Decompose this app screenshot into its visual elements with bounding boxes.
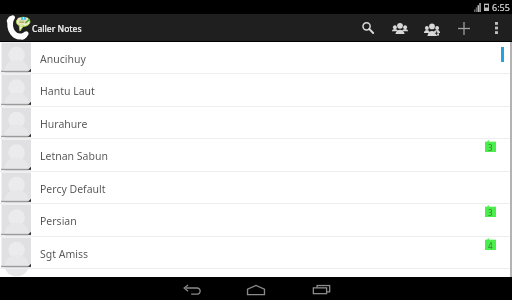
button[interactable]: Letnan Sabun [0,139,512,171]
staticText: 4 [488,240,493,251]
staticText: 6:55 [492,1,510,13]
staticText: Caller Notes [32,23,82,35]
staticText: Letnan Sabun [40,149,108,163]
button[interactable]: Hurahure [0,107,512,138]
button[interactable]: Sgt Amiss [0,237,512,268]
button[interactable]: Hantu Laut [0,74,512,106]
button[interactable]: Home [240,277,272,300]
button[interactable]: Create group [416,14,448,42]
staticText: Anucihuy [40,52,86,66]
button[interactable]: Recents [305,277,337,300]
staticText: Hurahure [40,117,88,131]
button[interactable]: Back [176,277,208,300]
button[interactable]: Anucihuy [0,42,512,73]
staticText: Sgt Amiss [40,247,89,261]
staticText: Hantu Laut [40,84,95,98]
button[interactable]: Persian [0,204,512,236]
button[interactable]: Search [352,14,384,42]
button[interactable]: Percy Default [0,172,512,203]
button[interactable]: Groups [384,14,416,42]
staticText: Persian [40,214,77,228]
staticText: 3 [488,142,493,153]
staticText: Percy Default [40,182,106,196]
button[interactable]: More options [480,14,512,42]
button[interactable]: Add contact [448,14,480,42]
staticText: 3 [488,207,493,218]
